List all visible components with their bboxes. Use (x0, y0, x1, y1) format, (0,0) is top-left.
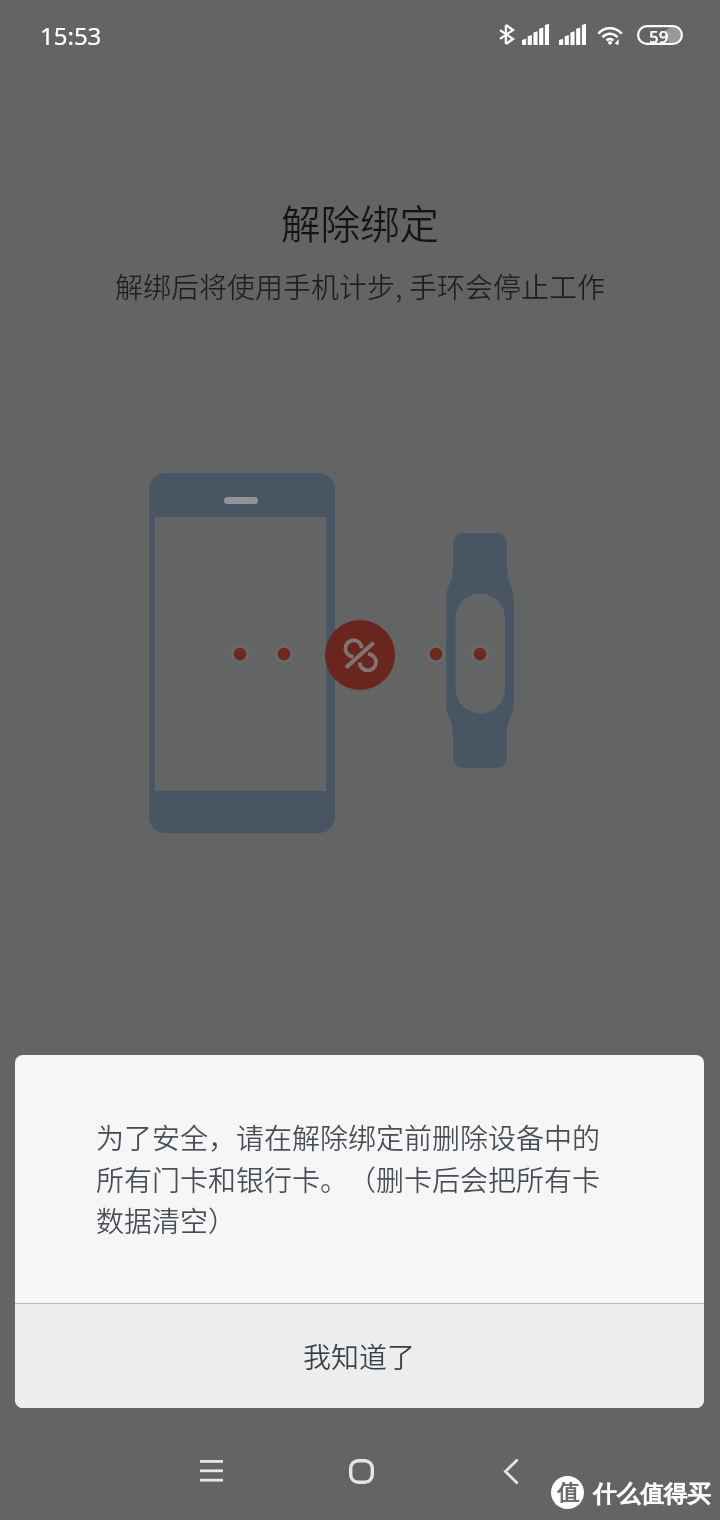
button[interactable]: Back (465, 1425, 557, 1517)
staticText: 59 (649, 25, 669, 45)
staticText: 为了安全，请在解除绑定前删除设备中的所有门卡和银行卡。（删卡后会把所有卡数据清空… (96, 1117, 608, 1240)
staticText: 解除绑定 (0, 193, 720, 250)
staticText: 值 (557, 1479, 579, 1507)
staticText: 我知道了 (303, 1336, 416, 1377)
button[interactable]: Recent apps (165, 1425, 257, 1517)
button[interactable]: Home (315, 1425, 407, 1517)
staticText: 15:53 (40, 19, 102, 52)
button[interactable]: 我知道了 (15, 1304, 704, 1408)
staticText: 什么值得买 (593, 1479, 711, 1509)
staticText: 解绑后将使用手机计步, 手环会停止工作 (0, 266, 720, 307)
